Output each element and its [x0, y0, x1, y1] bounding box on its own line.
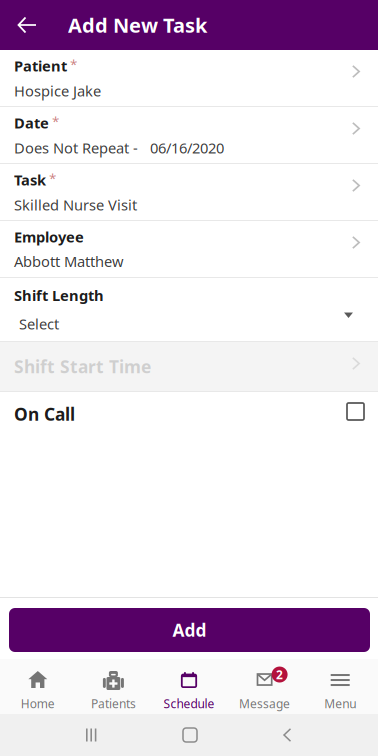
button[interactable]: Add	[9, 608, 370, 652]
staticText: Abbott Matthew	[14, 251, 124, 271]
button[interactable]: Date	[0, 107, 378, 163]
staticText: *	[70, 55, 77, 73]
button[interactable]: Patients	[76, 659, 151, 714]
staticText: Employee	[14, 227, 84, 246]
button[interactable]: Schedule	[151, 659, 227, 714]
staticText: Message	[239, 695, 290, 711]
staticText: 2	[276, 667, 283, 682]
staticText: Shift Length	[14, 285, 104, 305]
staticText: Schedule	[163, 695, 214, 711]
button[interactable]: On Call	[0, 392, 378, 436]
staticText: Patient	[14, 56, 67, 75]
staticText: Select	[19, 314, 59, 333]
staticText: Date	[14, 113, 49, 132]
button[interactable]: Shift Start Time	[0, 342, 378, 391]
staticText: On Call	[14, 402, 75, 425]
staticText: Task	[14, 170, 46, 189]
staticText: *	[49, 169, 56, 187]
button[interactable]: Employee	[0, 221, 378, 277]
button[interactable]: Back	[0, 0, 68, 50]
staticText: Menu	[324, 695, 356, 711]
staticText: Hospice Jake	[14, 81, 101, 101]
staticText: Skilled Nurse Visit	[14, 195, 137, 215]
button[interactable]: Task	[0, 164, 378, 220]
staticText: *	[52, 112, 59, 130]
staticText: Add	[172, 618, 206, 641]
staticText: Shift Start Time	[14, 355, 151, 378]
staticText: Add New Task	[68, 12, 207, 38]
button[interactable]: Menu	[302, 659, 378, 714]
button[interactable]: Shift Length	[0, 278, 378, 341]
button[interactable]: 2	[227, 659, 302, 714]
staticText: Does Not Repeat - 06/16/2020	[14, 138, 224, 158]
staticText: Home	[21, 695, 55, 711]
button[interactable]: Patient	[0, 50, 378, 106]
staticText: Patients	[91, 695, 136, 711]
button[interactable]: Home	[0, 659, 76, 714]
